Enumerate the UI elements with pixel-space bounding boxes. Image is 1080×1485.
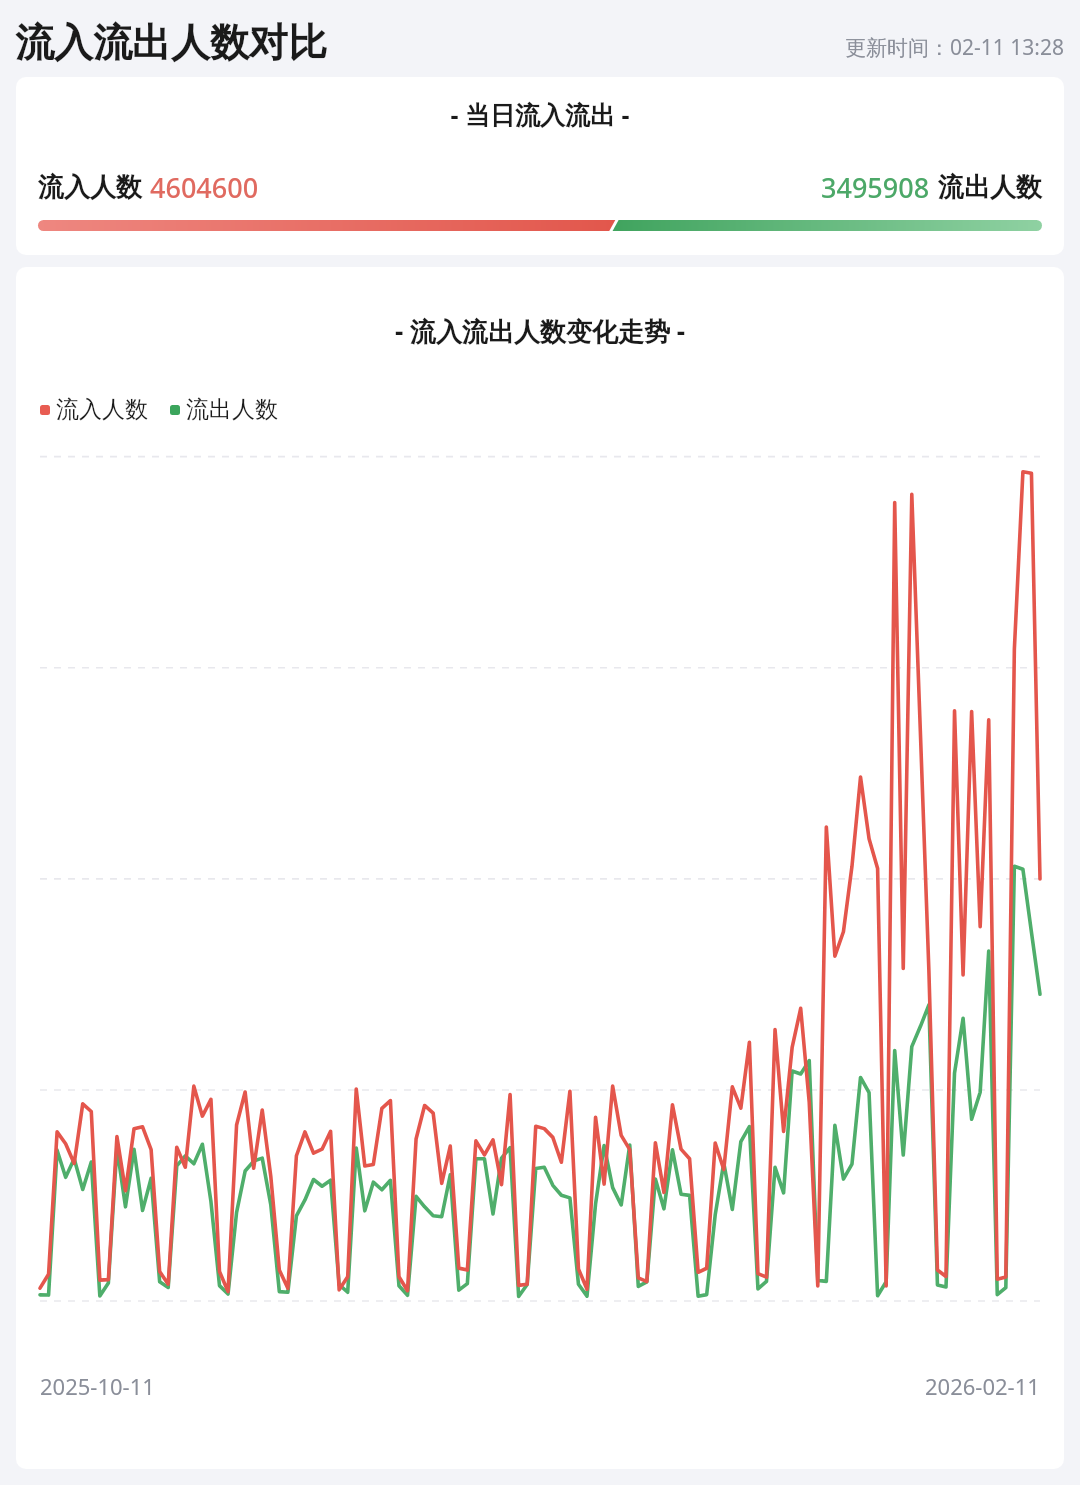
staticText: 流入人数 <box>56 395 148 424</box>
staticText: 2025-10-11 <box>40 1371 155 1401</box>
staticText: - 流入流出人数变化走势 - <box>16 313 1064 349</box>
button[interactable]: - 当日流入流出 - <box>16 77 1064 255</box>
button[interactable]: - 流入流出人数变化走势 - <box>16 267 1064 1469</box>
staticText: 流入人数 <box>38 171 142 204</box>
staticText: 2026-02-11 <box>925 1371 1040 1401</box>
staticText: 流入流出人数对比 <box>15 18 327 67</box>
staticText: 流出人数 <box>938 171 1042 204</box>
staticText: 流出人数 <box>186 395 278 424</box>
staticText: 4604600 <box>150 169 259 206</box>
staticText: - 当日流入流出 - <box>16 97 1064 131</box>
staticText: 3495908 <box>821 169 930 206</box>
staticText: 更新时间：02-11 13:28 <box>845 33 1064 62</box>
